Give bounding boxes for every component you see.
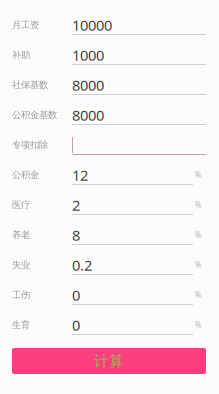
staticText: 医疗: [12, 199, 30, 211]
staticText: %: [195, 290, 202, 300]
staticText: 失业: [12, 259, 30, 271]
staticText: 计算: [94, 352, 124, 370]
staticText: %: [195, 170, 202, 180]
staticText: 1000: [72, 45, 104, 65]
button[interactable]: 计算: [12, 348, 206, 374]
staticText: 8: [72, 225, 80, 245]
staticText: %: [195, 200, 202, 210]
staticText: 专项扣除: [12, 139, 48, 151]
staticText: 公积金基数: [12, 109, 57, 121]
staticText: 社保基数: [12, 79, 48, 91]
staticText: 生育: [12, 319, 30, 331]
staticText: 0: [72, 315, 80, 335]
staticText: 10000: [72, 15, 112, 35]
staticText: 公积金: [12, 169, 39, 181]
staticText: 12: [72, 165, 88, 185]
staticText: 月工资: [12, 19, 39, 31]
staticText: 8000: [72, 75, 104, 95]
staticText: 养老: [12, 229, 30, 241]
staticText: %: [195, 230, 202, 240]
staticText: %: [195, 320, 202, 330]
staticText: 0.2: [72, 255, 92, 275]
staticText: %: [195, 260, 202, 270]
staticText: 0: [72, 285, 80, 305]
staticText: 工伤: [12, 289, 30, 301]
staticText: 2: [72, 195, 80, 215]
staticText: 补助: [12, 49, 30, 61]
staticText: 8000: [72, 105, 104, 125]
